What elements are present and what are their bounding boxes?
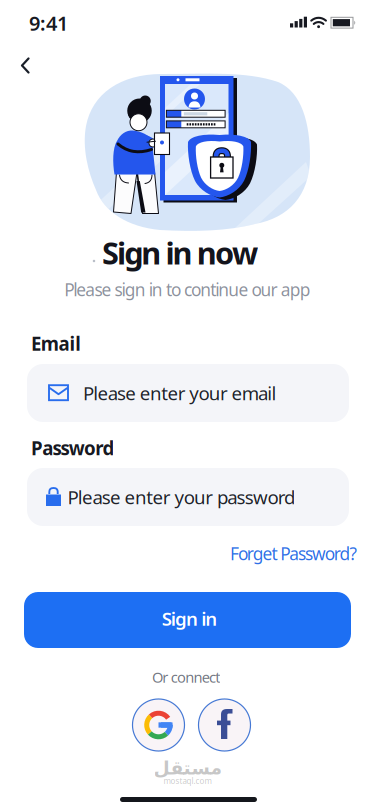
- staticText: Forget Password?: [230, 542, 357, 565]
- staticText: Sign in now: [102, 232, 258, 273]
- staticText: Sign in: [162, 606, 217, 631]
- staticText: 9:41: [29, 10, 68, 36]
- staticText: Or connect: [152, 667, 220, 687]
- staticText: Please enter your password: [67, 485, 295, 509]
- staticText: Please sign in to continue our app: [64, 278, 311, 301]
- staticText: Please enter your email: [83, 381, 276, 405]
- staticText: mostaql.com: [163, 776, 211, 786]
- staticText: Email: [31, 331, 81, 356]
- staticText: Password: [31, 436, 114, 460]
- staticText: مستقل: [153, 757, 222, 779]
